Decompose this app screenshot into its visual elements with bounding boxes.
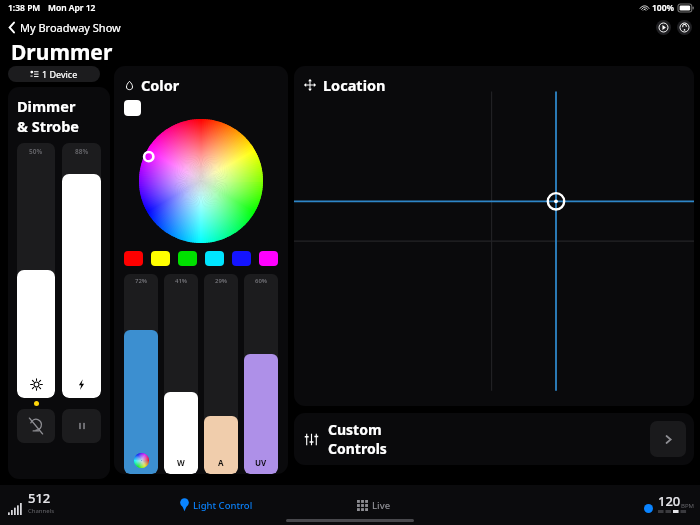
staticText: 1 Device xyxy=(42,68,78,80)
button[interactable]: 88% xyxy=(62,143,101,398)
button[interactable]: Help xyxy=(677,20,692,35)
staticText: W xyxy=(177,457,185,468)
button[interactable]: Playback xyxy=(656,20,671,35)
staticText: Drummer xyxy=(11,38,113,66)
button[interactable]: Blackout xyxy=(17,409,55,443)
button[interactable]: 72% xyxy=(124,274,158,474)
staticText: 1:38 PM xyxy=(8,2,41,14)
staticText: Light Control xyxy=(193,499,253,512)
button[interactable] xyxy=(259,251,278,266)
button[interactable]: Open custom controls xyxy=(650,421,686,457)
staticText: Controls xyxy=(328,439,387,458)
button[interactable]: 120 xyxy=(644,492,694,513)
button[interactable]: Custom xyxy=(294,413,694,465)
staticText: 120 xyxy=(658,492,681,510)
button[interactable]: Location xyxy=(294,66,694,406)
staticText: Live xyxy=(372,499,391,512)
button[interactable] xyxy=(232,251,251,266)
staticText: BPM xyxy=(681,502,694,510)
button[interactable] xyxy=(124,251,143,266)
button[interactable]: 1 Device xyxy=(8,66,100,82)
button[interactable]: 60% xyxy=(244,274,278,474)
button[interactable]: 50% xyxy=(17,143,55,398)
button[interactable]: 512 xyxy=(8,489,55,515)
staticText: Mon Apr 12 xyxy=(48,2,96,14)
staticText: 72% xyxy=(135,277,148,285)
staticText: 50% xyxy=(29,147,43,156)
staticText: 100% xyxy=(652,2,675,14)
button[interactable] xyxy=(178,251,197,266)
staticText: A xyxy=(218,457,224,468)
button[interactable]: Pause xyxy=(62,409,101,443)
button[interactable]: Light Control xyxy=(178,496,255,514)
staticText: & Strobe xyxy=(17,116,80,136)
staticText: UV xyxy=(255,457,267,468)
button[interactable]: Live xyxy=(355,497,393,514)
button[interactable] xyxy=(151,251,170,266)
button[interactable] xyxy=(124,100,141,116)
staticText: 512 xyxy=(28,489,51,507)
staticText: Dimmer xyxy=(17,96,76,116)
staticText: 88% xyxy=(75,147,89,156)
staticText: 29% xyxy=(215,277,228,285)
button[interactable]: 29% xyxy=(204,274,238,474)
staticText: Custom xyxy=(328,420,382,439)
button[interactable] xyxy=(205,251,224,266)
staticText: Color xyxy=(141,75,180,95)
button[interactable]: 41% xyxy=(164,274,198,474)
staticText: My Broadway Show xyxy=(20,20,121,35)
staticText: Location xyxy=(323,75,386,95)
staticText: 60% xyxy=(255,277,268,285)
button[interactable]: My Broadway Show xyxy=(6,18,123,37)
staticText: 41% xyxy=(175,277,188,285)
staticText: Channels xyxy=(28,507,55,515)
